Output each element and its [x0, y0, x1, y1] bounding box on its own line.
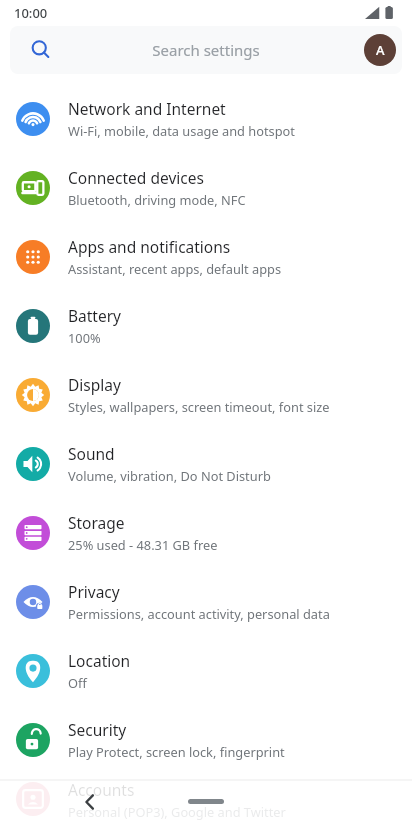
staticText: Styles, wallpapers, screen timeout, font…	[68, 398, 330, 415]
button[interactable]: Back	[72, 784, 108, 820]
staticText: Volume, vibration, Do Not Disturb	[68, 467, 271, 484]
staticText: Network and Internet	[68, 98, 226, 119]
button[interactable]: Home	[169, 791, 243, 811]
staticText: Battery	[68, 305, 122, 326]
staticText: Sound	[68, 443, 115, 464]
staticText: Play Protect, screen lock, fingerprint	[68, 743, 285, 760]
button[interactable]: Search	[10, 26, 402, 74]
button[interactable]: Privacy	[0, 567, 412, 636]
button[interactable]: Sound	[0, 429, 412, 498]
staticText: 25% used - 48.31 GB free	[68, 536, 218, 553]
button[interactable]: Account	[364, 34, 396, 66]
staticText: 100%	[68, 329, 101, 346]
button[interactable]: Battery	[0, 291, 412, 360]
staticText: 10:00	[14, 4, 48, 22]
staticText: A	[376, 41, 385, 59]
staticText: Privacy	[68, 581, 120, 602]
staticText: Off	[68, 674, 87, 691]
button[interactable]: Storage	[0, 498, 412, 567]
staticText: Location	[68, 650, 131, 671]
staticText: Storage	[68, 512, 125, 533]
button[interactable]: Security	[0, 705, 412, 774]
staticText: Assistant, recent apps, default apps	[68, 260, 282, 277]
button[interactable]: Display	[0, 360, 412, 429]
staticText: Display	[68, 374, 121, 395]
staticText: Accounts	[68, 779, 135, 800]
button[interactable]: Connected devices	[0, 153, 412, 222]
button[interactable]: Apps and notifications	[0, 222, 412, 291]
button[interactable]: Accounts	[0, 774, 412, 824]
staticText: Apps and notifications	[68, 236, 231, 257]
staticText: Personal (POP3), Google and Twitter	[68, 803, 286, 820]
staticText: Permissions, account activity, personal …	[68, 605, 330, 622]
button[interactable]: Location	[0, 636, 412, 705]
staticText: Connected devices	[68, 167, 204, 188]
other: Search	[30, 39, 52, 61]
staticText: Search settings	[152, 40, 260, 60]
button[interactable]: Network and Internet	[0, 84, 412, 153]
staticText: Bluetooth, driving mode, NFC	[68, 191, 246, 208]
staticText: Security	[68, 719, 127, 740]
staticText: Wi-Fi, mobile, data usage and hotspot	[68, 122, 295, 139]
